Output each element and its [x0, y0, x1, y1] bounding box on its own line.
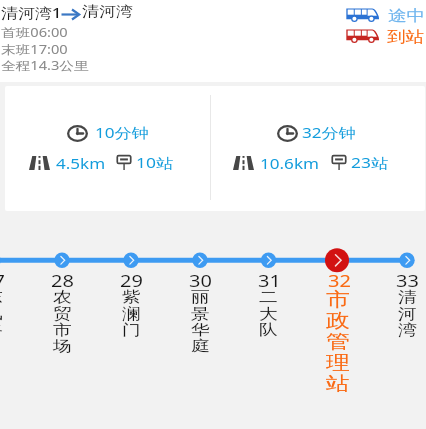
- staticText: 东 风 路 口: [0, 288, 3, 356]
- staticText: 清 河 湾: [398, 288, 417, 340]
- staticText: 4.5km: [56, 154, 106, 173]
- button[interactable]: [321, 270, 353, 395]
- staticText: 32分钟: [302, 123, 356, 142]
- button[interactable]: Bus arrived: [346, 28, 379, 42]
- staticText: 23站: [351, 153, 389, 172]
- staticText: 28: [51, 270, 75, 292]
- staticText: 清河湾1: [1, 3, 63, 22]
- button[interactable]: 途中: [387, 5, 425, 22]
- staticText: 农 贸 市 场: [53, 288, 72, 356]
- staticText: 33: [396, 270, 420, 292]
- staticText: 27: [0, 270, 6, 292]
- button[interactable]: Bus en route: [346, 7, 379, 21]
- staticText: 全程14.3公里: [1, 57, 89, 73]
- staticText: 10.6km: [260, 154, 320, 173]
- staticText: 31: [258, 270, 282, 292]
- button[interactable]: [46, 270, 78, 395]
- staticText: 10站: [136, 153, 174, 172]
- staticText: 二 大 队: [259, 288, 278, 340]
- button[interactable]: [5, 86, 209, 211]
- staticText: 首班06:00: [1, 24, 68, 40]
- button[interactable]: [210, 86, 425, 211]
- button[interactable]: [115, 270, 147, 395]
- button[interactable]: [0, 270, 9, 395]
- staticText: 10分钟: [95, 123, 149, 142]
- button[interactable]: [184, 270, 216, 395]
- staticText: 途中: [388, 6, 425, 23]
- staticText: 末班17:00: [1, 41, 68, 57]
- staticText: 丽 景 华 庭: [191, 288, 210, 356]
- staticText: 到站: [387, 27, 424, 44]
- staticText: 市 政 管 理 站: [326, 288, 350, 396]
- button[interactable]: 到站: [386, 26, 424, 43]
- staticText: 清河湾: [82, 3, 133, 21]
- staticText: 30: [189, 270, 213, 292]
- staticText: 32: [328, 270, 352, 292]
- button[interactable]: [391, 270, 423, 395]
- button[interactable]: [253, 270, 285, 395]
- staticText: 29: [120, 270, 144, 292]
- staticText: 紫 澜 门: [122, 288, 141, 340]
